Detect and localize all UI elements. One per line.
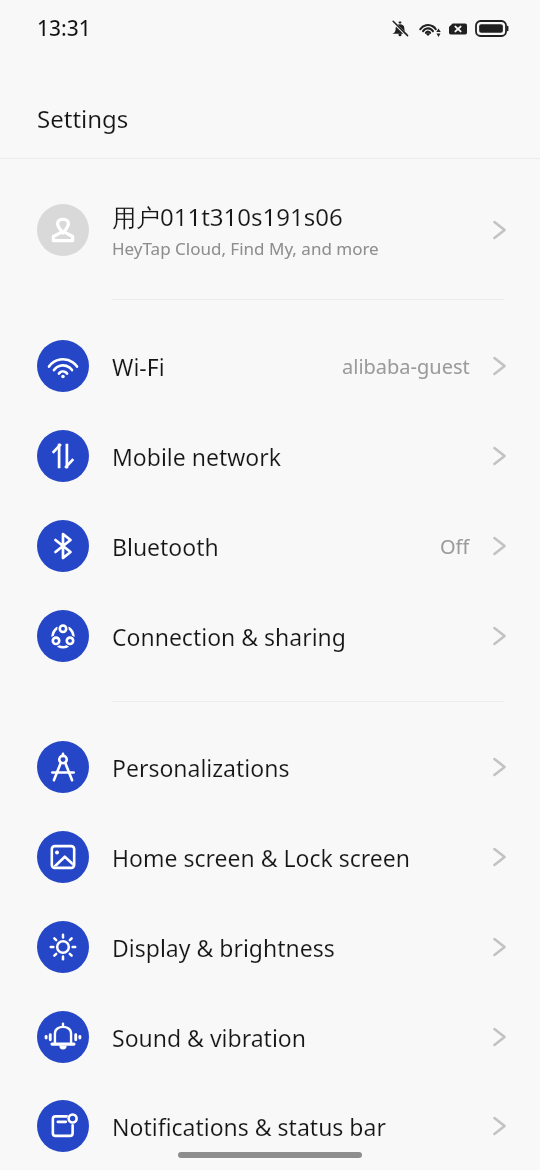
staticText: 用户011t310s191s06 (112, 200, 343, 233)
staticText: 13:31 (37, 14, 91, 43)
staticText: Mobile network (112, 441, 282, 472)
staticText: Display & brightness (112, 932, 335, 963)
button[interactable]: Personalizations (0, 722, 540, 812)
staticText: Wi-Fi (112, 351, 165, 382)
staticText: HeyTap Cloud, Find My, and more (112, 237, 379, 260)
staticText: Home screen & Lock screen (112, 842, 410, 873)
button[interactable]: Notifications & status bar (0, 1082, 540, 1170)
staticText: Off (440, 533, 470, 560)
staticText: alibaba-guest (342, 353, 470, 380)
button[interactable]: Display & brightness (0, 902, 540, 992)
staticText: Connection & sharing (112, 621, 346, 652)
staticText: Personalizations (112, 752, 290, 783)
staticText: Settings (37, 102, 129, 135)
other: Wi-Fi signal (418, 16, 443, 41)
button[interactable]: Bluetooth (0, 501, 540, 591)
button[interactable]: Connection & sharing (0, 591, 540, 681)
staticText: Notifications & status bar (112, 1111, 386, 1142)
button[interactable]: Home screen & Lock screen (0, 812, 540, 902)
button[interactable]: Mobile network (0, 411, 540, 501)
staticText: Sound & vibration (112, 1022, 306, 1053)
other: Battery full (476, 21, 509, 36)
button[interactable]: Sound & vibration (0, 992, 540, 1082)
button[interactable]: Wi-Fi (0, 321, 540, 411)
staticText: Bluetooth (112, 531, 219, 562)
button[interactable]: 用户011t310s191s06 (0, 180, 540, 280)
other: Silent mode (391, 20, 409, 38)
other: No SIM card (448, 19, 468, 39)
